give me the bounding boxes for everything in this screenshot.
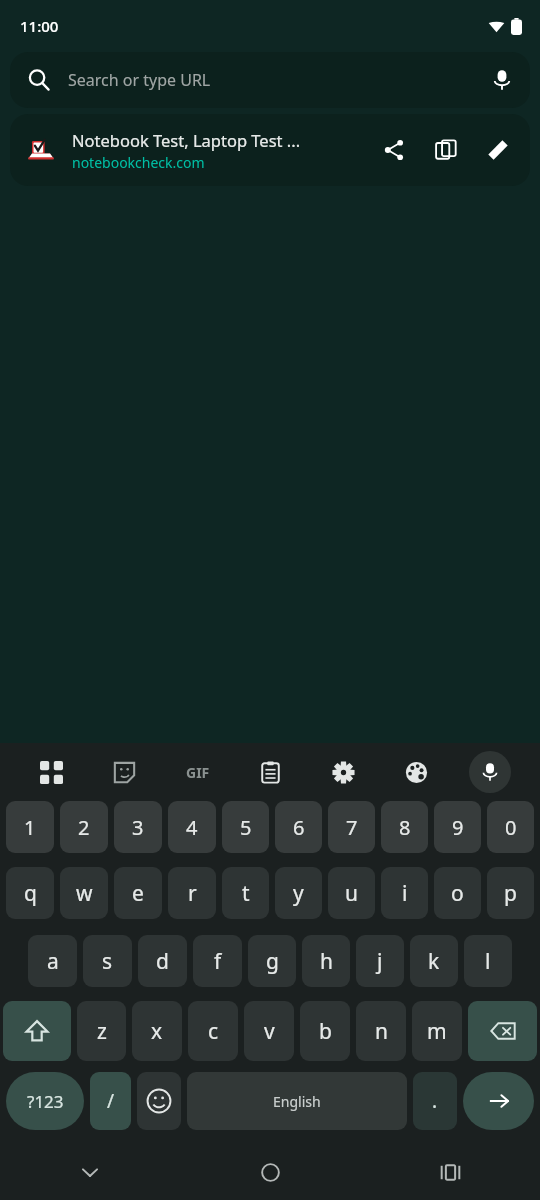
staticText: 5 bbox=[240, 814, 252, 841]
button[interactable]: 7 bbox=[328, 801, 375, 853]
button[interactable]: w bbox=[60, 867, 108, 919]
button[interactable]: b bbox=[300, 1001, 350, 1061]
button[interactable]: Voice input bbox=[469, 751, 511, 793]
staticText: 2 bbox=[78, 814, 90, 841]
staticText: f bbox=[214, 947, 222, 976]
button[interactable]: f bbox=[193, 935, 242, 987]
button[interactable]: 5 bbox=[222, 801, 269, 853]
staticText: . bbox=[432, 1088, 438, 1114]
staticText: z bbox=[97, 1017, 107, 1046]
button[interactable]: / bbox=[90, 1072, 131, 1130]
staticText: b bbox=[319, 1017, 332, 1046]
button[interactable]: 0 bbox=[487, 801, 534, 853]
button[interactable]: y bbox=[275, 867, 322, 919]
staticText: k bbox=[428, 947, 440, 976]
button[interactable]: ?123 bbox=[6, 1072, 84, 1130]
staticText: w bbox=[76, 879, 93, 908]
button[interactable]: Theme bbox=[380, 743, 453, 801]
staticText: 9 bbox=[452, 814, 464, 841]
staticText: 0 bbox=[505, 814, 517, 841]
button[interactable]: i bbox=[381, 867, 428, 919]
button[interactable]: e bbox=[114, 867, 162, 919]
staticText: v bbox=[264, 1017, 275, 1046]
button[interactable]: Go bbox=[463, 1072, 534, 1130]
staticText: j bbox=[377, 947, 383, 976]
button[interactable]: 8 bbox=[381, 801, 428, 853]
button[interactable]: GIF bbox=[161, 743, 234, 801]
button[interactable]: t bbox=[222, 867, 269, 919]
button[interactable]: . bbox=[413, 1072, 457, 1130]
staticText: 6 bbox=[293, 814, 305, 841]
button[interactable]: a bbox=[28, 935, 77, 987]
button[interactable]: Voice search bbox=[474, 52, 530, 108]
button[interactable]: Stickers bbox=[88, 743, 161, 801]
staticText: 11:00 bbox=[20, 16, 59, 36]
button[interactable]: Home bbox=[180, 1144, 360, 1200]
button[interactable]: v bbox=[244, 1001, 294, 1061]
button[interactable]: p bbox=[487, 867, 534, 919]
staticText: x bbox=[151, 1017, 163, 1046]
staticText: 8 bbox=[399, 814, 411, 841]
staticText: t bbox=[242, 879, 250, 908]
button[interactable]: l bbox=[464, 935, 512, 987]
button[interactable]: u bbox=[328, 867, 375, 919]
staticText: g bbox=[266, 947, 279, 976]
staticText: Notebook Test, Laptop Test ... bbox=[72, 129, 301, 151]
staticText: u bbox=[345, 879, 358, 908]
staticText: n bbox=[375, 1017, 388, 1046]
button[interactable]: k bbox=[410, 935, 458, 987]
button[interactable]: 1 bbox=[6, 801, 54, 853]
button[interactable]: s bbox=[83, 935, 132, 987]
staticText: p bbox=[504, 879, 517, 908]
button[interactable]: Shift bbox=[3, 1001, 71, 1061]
staticText: notebookcheck.com bbox=[72, 153, 205, 172]
button[interactable]: g bbox=[248, 935, 296, 987]
staticText: o bbox=[451, 879, 464, 908]
staticText: s bbox=[102, 947, 113, 976]
button[interactable]: q bbox=[6, 867, 54, 919]
staticText: c bbox=[208, 1017, 219, 1046]
button[interactable]: Emoji bbox=[137, 1072, 181, 1130]
button[interactable]: Settings bbox=[307, 743, 380, 801]
button[interactable]: Hide keyboard bbox=[0, 1144, 180, 1200]
button[interactable]: h bbox=[302, 935, 350, 987]
button[interactable]: r bbox=[168, 867, 216, 919]
button[interactable]: Notebook Test, Laptop Test ... bbox=[10, 114, 530, 186]
button[interactable]: 3 bbox=[114, 801, 162, 853]
button[interactable]: o bbox=[434, 867, 481, 919]
staticText: GIF bbox=[186, 763, 210, 782]
staticText: q bbox=[24, 879, 37, 908]
staticText: a bbox=[47, 947, 59, 976]
button[interactable]: x bbox=[132, 1001, 182, 1061]
button[interactable]: 2 bbox=[60, 801, 108, 853]
button[interactable]: d bbox=[138, 935, 187, 987]
staticText: / bbox=[107, 1088, 115, 1114]
button[interactable]: n bbox=[356, 1001, 406, 1061]
staticText: ?123 bbox=[27, 1090, 64, 1113]
button[interactable]: j bbox=[356, 935, 404, 987]
staticText: 4 bbox=[186, 814, 198, 841]
button[interactable]: Share bbox=[368, 124, 420, 176]
button[interactable]: 4 bbox=[168, 801, 216, 853]
button[interactable]: 6 bbox=[275, 801, 322, 853]
button[interactable]: 9 bbox=[434, 801, 481, 853]
button[interactable]: z bbox=[77, 1001, 126, 1061]
button[interactable]: Clipboard bbox=[234, 743, 307, 801]
staticText: h bbox=[320, 947, 333, 976]
button[interactable]: Backspace bbox=[468, 1001, 537, 1061]
button[interactable]: m bbox=[412, 1001, 462, 1061]
staticText: e bbox=[132, 879, 144, 908]
button[interactable]: Recent apps bbox=[360, 1144, 540, 1200]
button[interactable]: c bbox=[188, 1001, 238, 1061]
button[interactable]: English bbox=[187, 1072, 407, 1130]
button[interactable]: Search or type URL bbox=[10, 52, 530, 108]
staticText: 3 bbox=[132, 814, 144, 841]
staticText: i bbox=[402, 879, 408, 908]
staticText: r bbox=[188, 879, 197, 908]
staticText: English bbox=[273, 1092, 321, 1111]
button[interactable]: Edit bbox=[472, 124, 524, 176]
button[interactable]: Apps bbox=[14, 743, 88, 801]
button[interactable]: Copy bbox=[420, 124, 472, 176]
staticText: y bbox=[293, 879, 304, 908]
staticText: l bbox=[485, 947, 491, 976]
